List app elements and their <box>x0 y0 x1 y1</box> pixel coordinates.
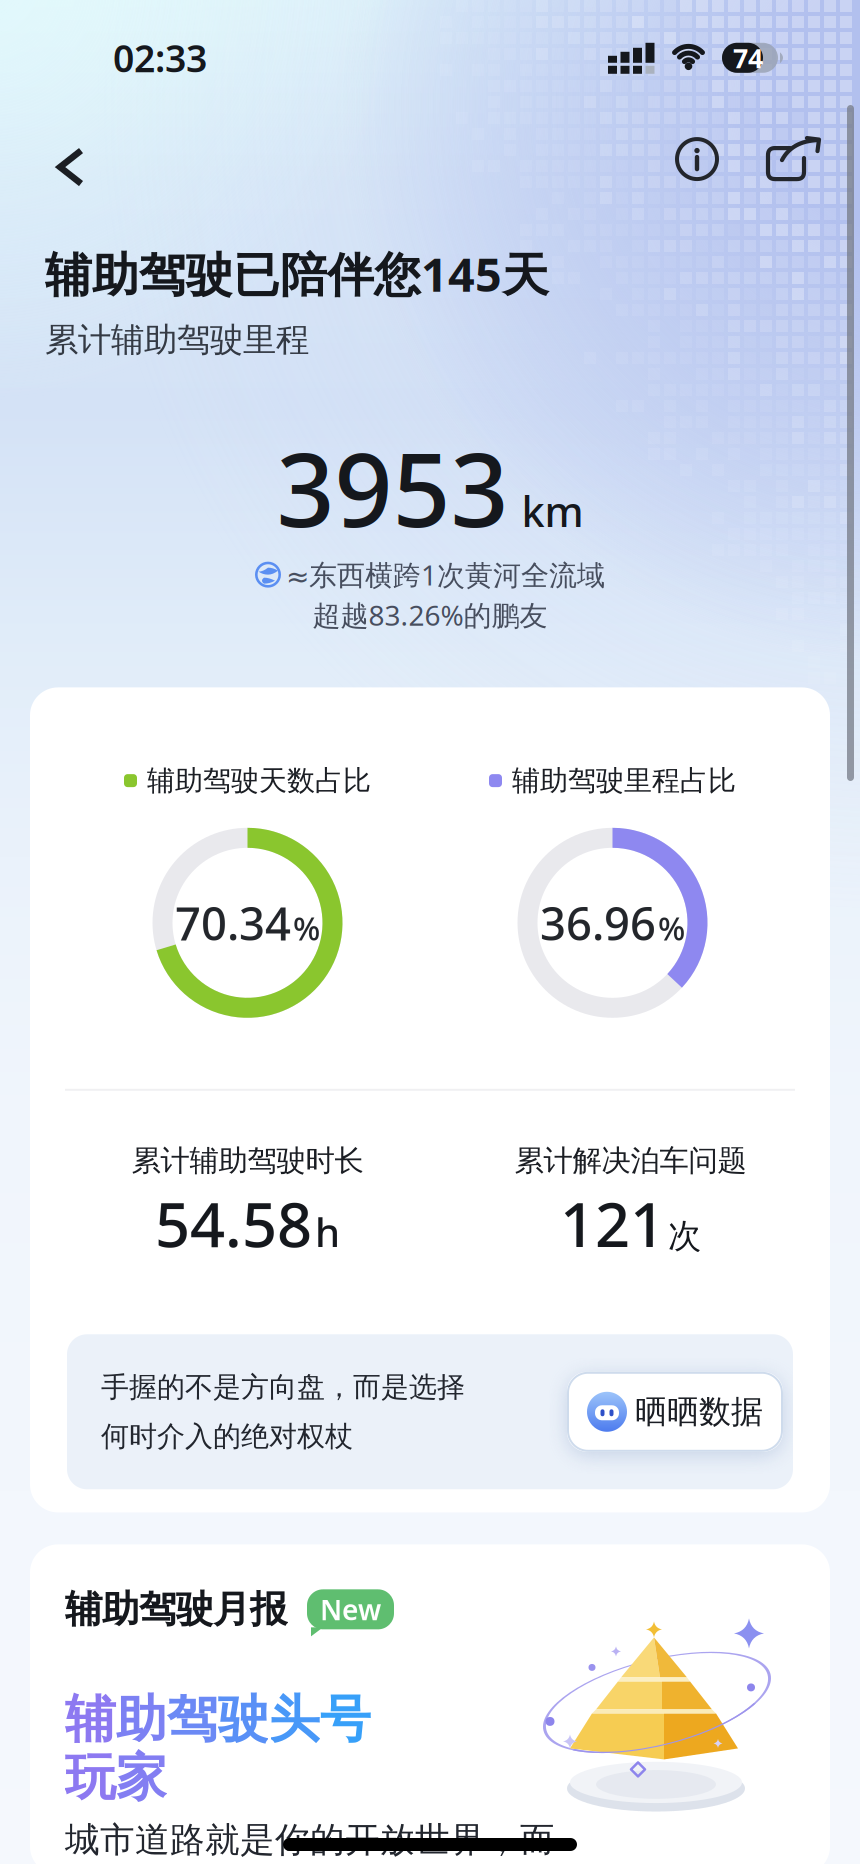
staticText: 玩 <box>65 1746 116 1809</box>
staticText: 辅助驾驶已陪伴您145天 <box>45 243 549 305</box>
staticText: 何时介入的绝对权杖 <box>101 1419 353 1454</box>
staticText: 累计辅助驾驶时长 <box>131 1143 363 1179</box>
staticText: 54.58 <box>155 1183 312 1264</box>
staticText: 超越83.26%的鹏友 <box>312 596 547 633</box>
staticText: 02:33 <box>113 33 207 83</box>
staticText: 晒晒数据 <box>635 1392 763 1431</box>
staticText: 36.96 <box>540 893 656 953</box>
staticText: 城市道路就是你的开放世界，而 <box>65 1819 555 1861</box>
staticText: 辅助驾驶天数占比 <box>147 763 371 798</box>
staticText: 号 <box>320 1688 371 1750</box>
staticText: % <box>658 907 685 949</box>
staticText: 70.34 <box>175 893 291 953</box>
button[interactable]: 辅助驾驶月报 <box>30 1544 830 1864</box>
staticText: 3953 <box>276 420 508 555</box>
staticText: 74 <box>733 40 763 75</box>
button[interactable]: Back <box>0 135 81 184</box>
staticText: 121 <box>560 1183 665 1264</box>
staticText: ≈东西横跨1次黄河全流域 <box>286 556 605 593</box>
staticText: 手握的不是方向盘，而是选择 <box>101 1370 465 1404</box>
button[interactable]: Share <box>719 138 860 180</box>
staticText: 头 <box>269 1688 320 1750</box>
staticText: 家 <box>116 1746 167 1809</box>
button[interactable]: 晒晒数据 <box>567 1372 783 1452</box>
staticText: h <box>315 1205 340 1258</box>
staticText: New <box>320 1591 381 1628</box>
staticText: 辅助驾驶里程占比 <box>512 763 736 798</box>
staticText: 驾 <box>167 1688 218 1750</box>
staticText: 驶 <box>218 1688 269 1750</box>
staticText: 累计辅助驾驶里程 <box>45 319 309 360</box>
staticText: % <box>293 907 320 949</box>
staticText: 助 <box>116 1688 167 1750</box>
staticText: 累计解决泊车问题 <box>514 1143 746 1179</box>
staticText: 辅 <box>65 1688 116 1750</box>
staticText: 辅助驾驶月报 <box>65 1586 287 1632</box>
button[interactable]: Info <box>675 137 719 181</box>
staticText: km <box>521 484 583 538</box>
staticText: 次 <box>668 1216 701 1257</box>
